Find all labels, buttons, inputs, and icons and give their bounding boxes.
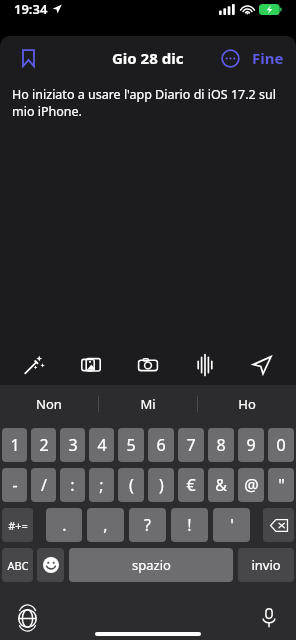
staticText: invio (251, 556, 281, 574)
staticText: Ho iniziato a usare l'app Diario di iOS … (12, 86, 284, 120)
staticText: Ho (238, 395, 256, 413)
button[interactable]: ) (148, 468, 174, 502)
button[interactable]: & (208, 468, 234, 502)
staticText: 9 (246, 434, 256, 456)
staticText: . (62, 514, 67, 536)
staticText: spazio (132, 556, 171, 574)
button[interactable]: Posizione (239, 347, 285, 383)
button[interactable]: ; (89, 468, 114, 502)
staticText: @ (244, 474, 259, 496)
button[interactable]: Foto (68, 347, 114, 383)
button[interactable]: Emoji (37, 548, 64, 582)
staticText: 2 (39, 434, 49, 456)
button[interactable]: 9 (238, 428, 264, 462)
button[interactable]: invio (238, 548, 294, 582)
button[interactable]: Fotocamera (125, 347, 171, 383)
button[interactable]: : (60, 468, 85, 502)
button[interactable]: Audio (182, 347, 228, 383)
staticText: - (12, 474, 18, 496)
button[interactable]: 7 (178, 428, 204, 462)
staticText: " (278, 474, 285, 496)
button[interactable]: Dettatura (254, 603, 284, 633)
button[interactable]: 4 (89, 428, 114, 462)
button[interactable]: 0 (268, 428, 294, 462)
staticText: ABC (7, 558, 29, 573)
button[interactable]: 8 (208, 428, 234, 462)
button[interactable]: 5 (118, 428, 144, 462)
staticText: 8 (216, 434, 226, 456)
button[interactable]: ( (118, 468, 144, 502)
staticText: 3 (68, 434, 78, 456)
staticText: Mi (140, 395, 156, 413)
staticText: ! (187, 514, 192, 536)
staticText: € (186, 474, 196, 496)
button[interactable]: - (2, 468, 27, 502)
staticText: 5 (126, 434, 136, 456)
staticText: & (215, 474, 227, 496)
button[interactable]: € (178, 468, 204, 502)
staticText: ' (230, 514, 234, 536)
button[interactable]: ? (129, 508, 166, 542)
staticText: 6 (156, 434, 166, 456)
button[interactable]: #+= (2, 508, 33, 542)
button[interactable]: Elimina (263, 508, 294, 542)
staticText: 4 (97, 434, 107, 456)
staticText: Gio 28 dic (112, 48, 184, 68)
staticText: Non (36, 395, 62, 413)
button[interactable]: 1 (2, 428, 27, 462)
button[interactable]: , (87, 508, 124, 542)
button[interactable]: ! (171, 508, 208, 542)
staticText: 7 (186, 434, 196, 456)
staticText: ? (144, 514, 151, 536)
staticText: Fine (252, 48, 284, 68)
button[interactable]: . (46, 508, 82, 542)
button[interactable]: spazio (69, 548, 233, 582)
button[interactable]: ' (213, 508, 250, 542)
button[interactable]: @ (238, 468, 264, 502)
button[interactable]: Fine (252, 48, 284, 68)
button[interactable]: " (268, 468, 294, 502)
staticText: 0 (276, 434, 286, 456)
button[interactable]: Non (0, 385, 98, 423)
button[interactable]: 2 (31, 428, 56, 462)
button[interactable]: / (31, 468, 56, 502)
staticText: ) (159, 474, 164, 496)
button[interactable]: 3 (60, 428, 85, 462)
staticText: ; (99, 474, 104, 496)
staticText: 1 (10, 434, 20, 456)
button[interactable]: 6 (148, 428, 174, 462)
button[interactable]: Cambia tastiera (12, 603, 42, 633)
staticText: / (41, 474, 47, 496)
button[interactable]: Preferiti (12, 42, 44, 74)
staticText: ( (129, 474, 134, 496)
button[interactable]: Mi (99, 385, 197, 423)
staticText: #+= (8, 518, 28, 533)
staticText: , (103, 514, 108, 536)
button[interactable]: Altre opzioni (216, 44, 244, 72)
button[interactable]: Ho (198, 385, 296, 423)
staticText: : (70, 474, 75, 496)
staticText: 19:34 (14, 0, 48, 18)
button[interactable]: ABC (2, 548, 33, 582)
button[interactable]: Effetti (11, 347, 57, 383)
